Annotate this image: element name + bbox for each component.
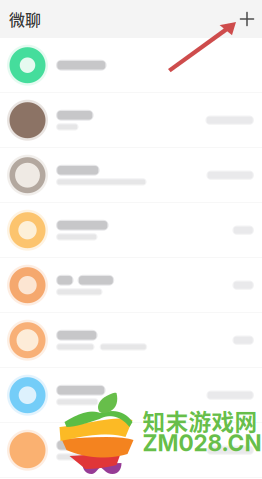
- button[interactable]: [0, 313, 262, 368]
- staticText: 知末游戏网: [142, 404, 257, 437]
- staticText: ZM028.CN: [142, 429, 261, 457]
- button[interactable]: [0, 148, 262, 203]
- button[interactable]: [0, 423, 262, 478]
- button[interactable]: [0, 203, 262, 258]
- button[interactable]: [0, 38, 262, 93]
- button[interactable]: New chat: [236, 8, 262, 30]
- button[interactable]: [0, 93, 262, 148]
- button[interactable]: [0, 368, 262, 423]
- staticText: 微聊: [9, 7, 41, 31]
- button[interactable]: [0, 258, 262, 313]
